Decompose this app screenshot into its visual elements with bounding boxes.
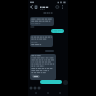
button[interactable]: Attach — [33, 86, 37, 90]
button[interactable]: Message input — [40, 80, 62, 84]
button[interactable]: Send — [63, 80, 68, 85]
button[interactable] — [40, 5, 52, 10]
button[interactable] — [30, 17, 54, 26]
button[interactable] — [30, 35, 53, 47]
button[interactable]: Video call — [55, 4, 60, 10]
button[interactable] — [45, 50, 54, 52]
button[interactable]: Recents — [58, 91, 62, 95]
button[interactable]: Back — [34, 91, 38, 95]
button[interactable]: Home — [46, 91, 50, 95]
button[interactable] — [32, 75, 40, 78]
button[interactable]: Camera — [37, 86, 41, 90]
button[interactable]: Contact avatar — [34, 5, 38, 9]
button[interactable] — [30, 54, 56, 80]
button[interactable]: Back — [29, 4, 34, 10]
button[interactable] — [51, 29, 64, 33]
button[interactable]: More options — [60, 4, 65, 10]
button[interactable]: Emoji — [29, 86, 33, 90]
